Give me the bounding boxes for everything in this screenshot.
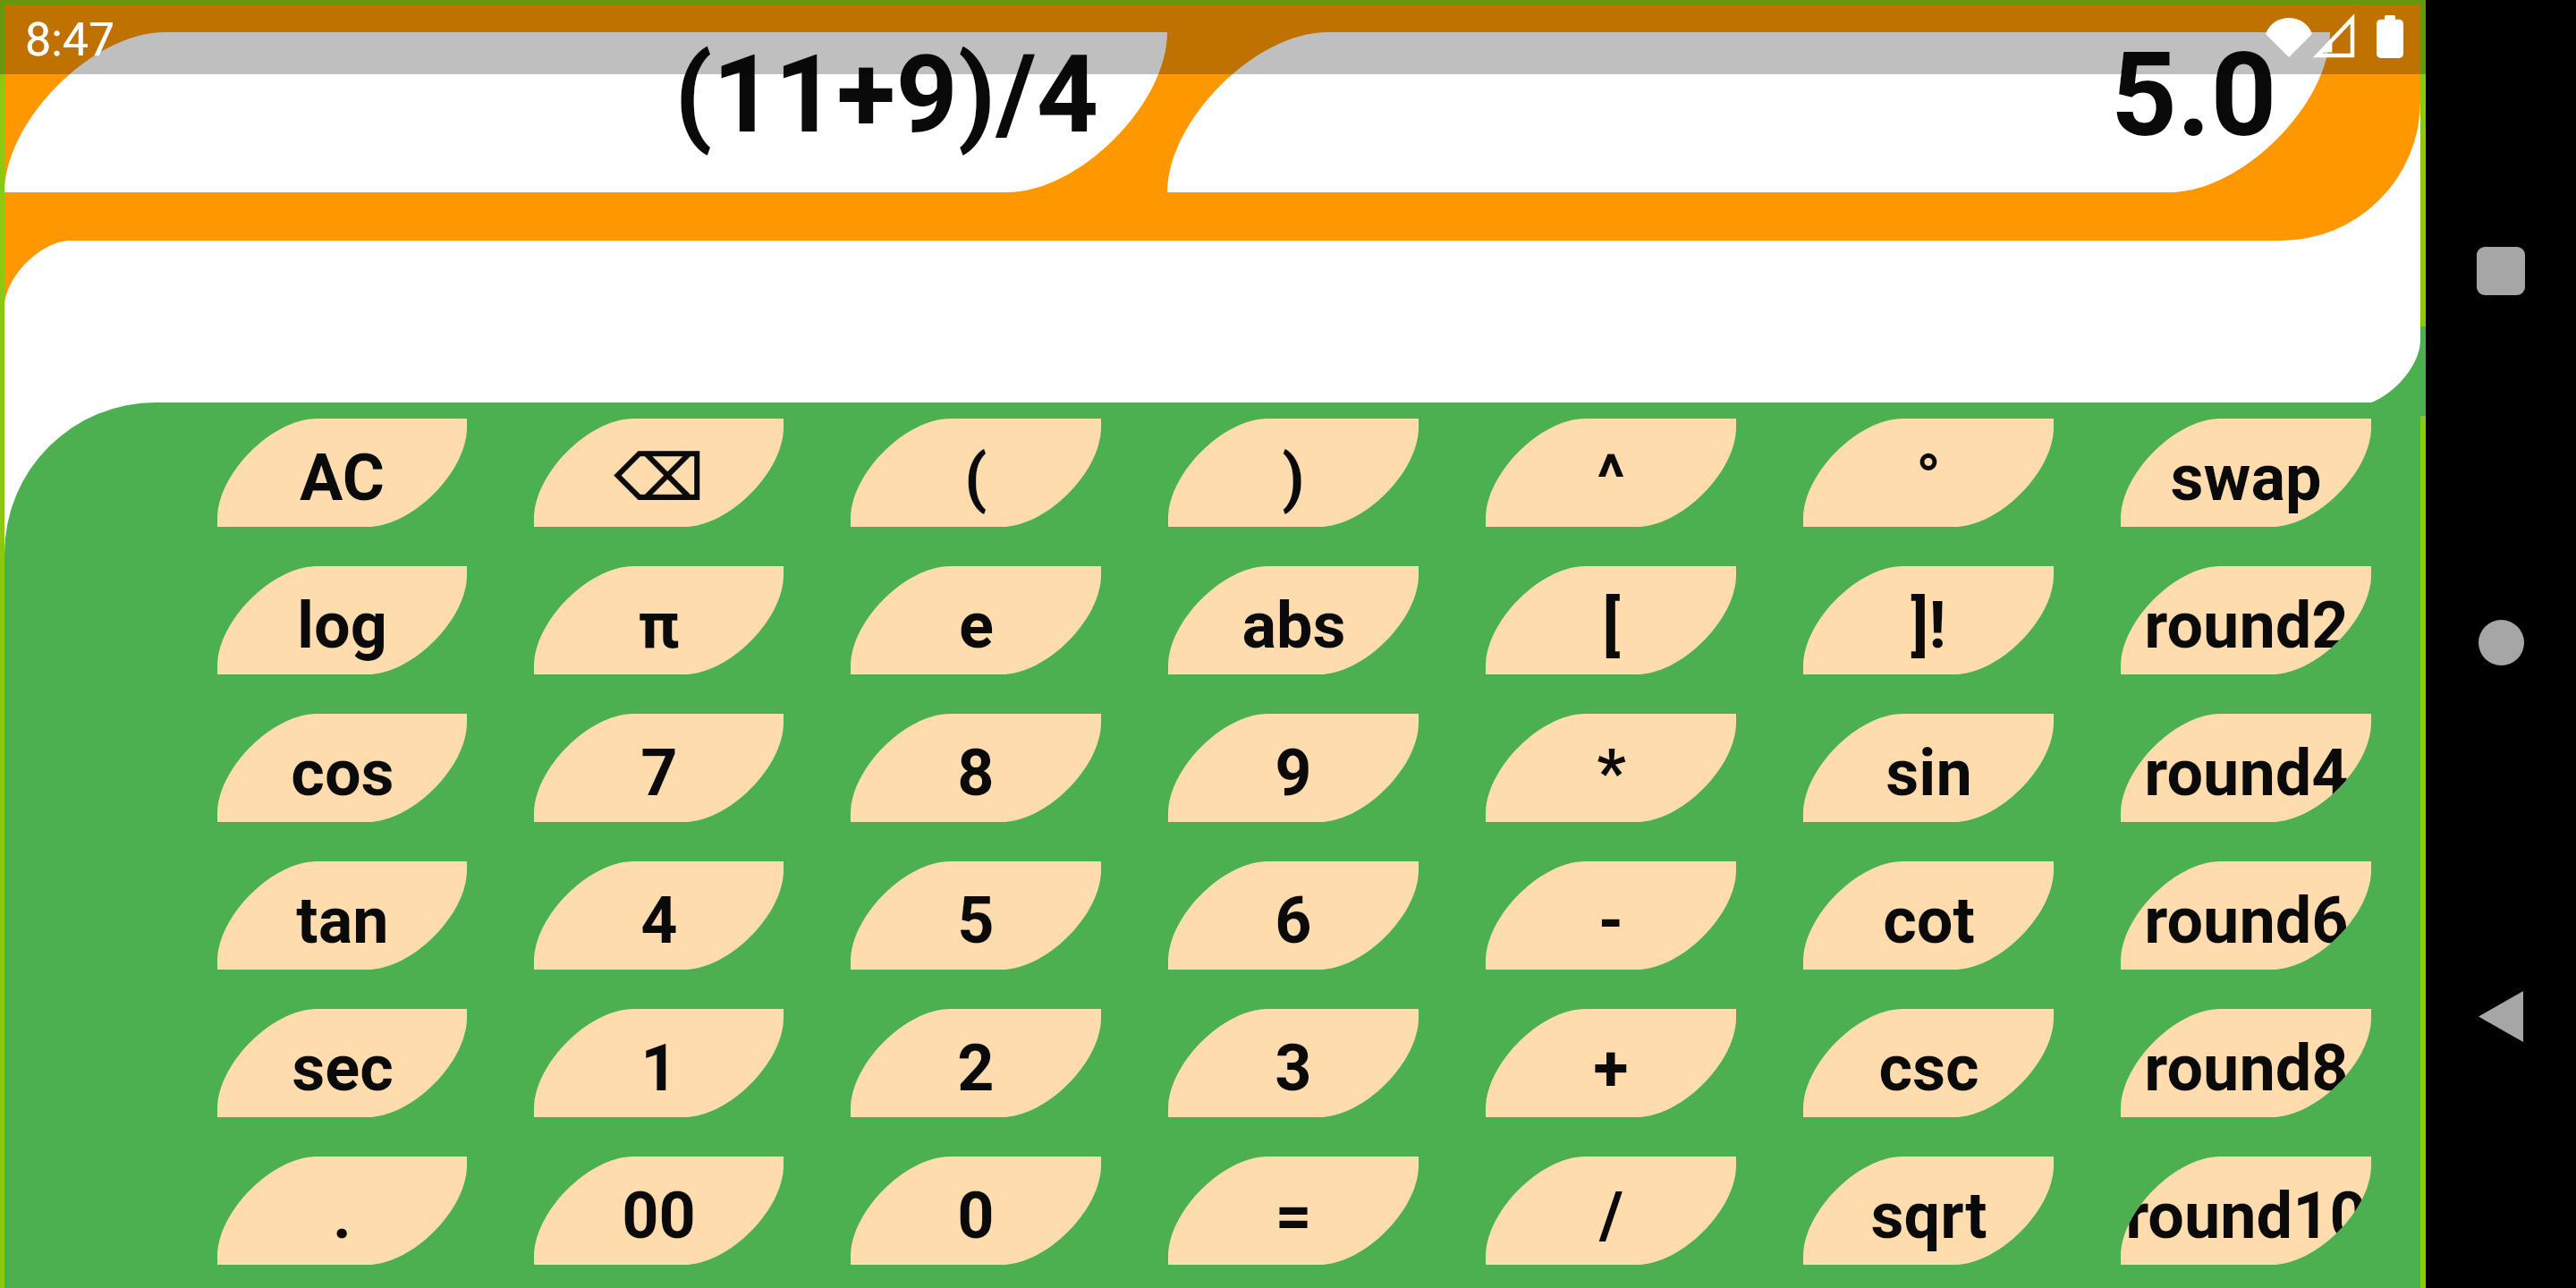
staticText: e xyxy=(959,588,994,663)
staticText: 3 xyxy=(1275,1030,1312,1106)
staticText: 2 xyxy=(957,1030,995,1106)
staticText: abs xyxy=(1241,588,1346,663)
staticText: ]! xyxy=(1911,588,1946,663)
staticText: 7 xyxy=(640,735,678,810)
staticText: * xyxy=(1597,735,1626,810)
button[interactable]: 0 xyxy=(851,1157,1101,1265)
button[interactable]: - xyxy=(1486,861,1736,970)
button[interactable]: ^ xyxy=(1486,419,1736,527)
staticText: 5.0 xyxy=(2111,32,2277,163)
button[interactable]: round10 xyxy=(2121,1157,2371,1265)
staticText: ° xyxy=(1916,440,1941,515)
button[interactable]: swap xyxy=(2121,419,2371,527)
button[interactable]: sin xyxy=(1803,714,2054,822)
staticText: ( xyxy=(964,440,987,515)
button[interactable]: e xyxy=(851,566,1101,674)
button[interactable]: + xyxy=(1486,1009,1736,1117)
button[interactable]: Back xyxy=(2479,991,2523,1042)
staticText: - xyxy=(1598,883,1623,958)
staticText: sec xyxy=(292,1030,394,1106)
button[interactable]: round2 xyxy=(2121,566,2371,674)
button[interactable]: 5.0 xyxy=(1167,32,2330,192)
button[interactable]: = xyxy=(1168,1157,1419,1265)
staticText: swap xyxy=(2170,440,2322,515)
staticText: tan xyxy=(296,883,389,958)
button[interactable]: csc xyxy=(1803,1009,2054,1117)
staticText: ⌫ xyxy=(614,440,705,515)
staticText: [ xyxy=(1602,588,1621,663)
staticText: cot xyxy=(1883,883,1975,958)
button[interactable]: [ xyxy=(1486,566,1736,674)
staticText: = xyxy=(1275,1178,1312,1253)
button[interactable]: ( xyxy=(851,419,1101,527)
staticText: ) xyxy=(1282,440,1305,515)
staticText: + xyxy=(1593,1030,1629,1106)
button[interactable]: log xyxy=(217,566,467,674)
staticText: π xyxy=(638,588,680,663)
staticText: 0 xyxy=(957,1178,995,1253)
button[interactable]: round4 xyxy=(2121,714,2371,822)
button[interactable]: round8 xyxy=(2121,1009,2371,1117)
staticText: sqrt xyxy=(1870,1178,1987,1253)
staticText: AC xyxy=(300,440,385,515)
staticText: 5 xyxy=(957,883,995,958)
button[interactable]: abs xyxy=(1168,566,1419,674)
button[interactable]: 2 xyxy=(851,1009,1101,1117)
button[interactable]: 6 xyxy=(1168,861,1419,970)
button[interactable]: ° xyxy=(1803,419,2054,527)
button[interactable]: round6 xyxy=(2121,861,2371,970)
button[interactable]: ]! xyxy=(1803,566,2054,674)
button[interactable]: π xyxy=(534,566,784,674)
button[interactable]: . xyxy=(217,1157,467,1265)
staticText: round8 xyxy=(2144,1030,2349,1106)
button[interactable]: 4 xyxy=(534,861,784,970)
staticText: 6 xyxy=(1275,883,1312,958)
staticText: round10 xyxy=(2125,1178,2367,1253)
button[interactable]: 3 xyxy=(1168,1009,1419,1117)
staticText: 9 xyxy=(1275,735,1312,810)
button[interactable]: cos xyxy=(217,714,467,822)
staticText: sin xyxy=(1885,735,1972,810)
staticText: round6 xyxy=(2144,883,2349,958)
staticText: 00 xyxy=(622,1178,696,1253)
button[interactable]: 5 xyxy=(851,861,1101,970)
staticText: . xyxy=(333,1178,352,1253)
button[interactable]: ) xyxy=(1168,419,1419,527)
button[interactable]: Home xyxy=(2479,620,2524,665)
button[interactable]: 7 xyxy=(534,714,784,822)
staticText: round4 xyxy=(2144,735,2349,810)
button[interactable]: Recent apps xyxy=(2477,247,2525,295)
button[interactable]: 00 xyxy=(534,1157,784,1265)
staticText: ^ xyxy=(1597,440,1625,515)
button[interactable]: sqrt xyxy=(1803,1157,2054,1265)
button[interactable]: 8 xyxy=(851,714,1101,822)
button[interactable]: sec xyxy=(217,1009,467,1117)
staticText: 8:47 xyxy=(25,13,115,67)
button[interactable]: AC xyxy=(217,419,467,527)
staticText: round2 xyxy=(2144,588,2349,663)
button[interactable]: 9 xyxy=(1168,714,1419,822)
staticText: 4 xyxy=(640,883,678,958)
staticText: / xyxy=(1599,1178,1623,1253)
staticText: (11+9)/4 xyxy=(674,32,1099,158)
staticText: cos xyxy=(291,735,394,810)
button[interactable]: * xyxy=(1486,714,1736,822)
button[interactable]: 1 xyxy=(534,1009,784,1117)
button[interactable]: ⌫ xyxy=(534,419,784,527)
button[interactable]: (11+9)/4 xyxy=(4,32,1167,192)
staticText: log xyxy=(297,588,387,663)
staticText: 1 xyxy=(640,1030,678,1106)
button[interactable]: cot xyxy=(1803,861,2054,970)
staticText: csc xyxy=(1878,1030,1979,1106)
staticText: 8 xyxy=(957,735,995,810)
button[interactable]: / xyxy=(1486,1157,1736,1265)
button[interactable]: tan xyxy=(217,861,467,970)
